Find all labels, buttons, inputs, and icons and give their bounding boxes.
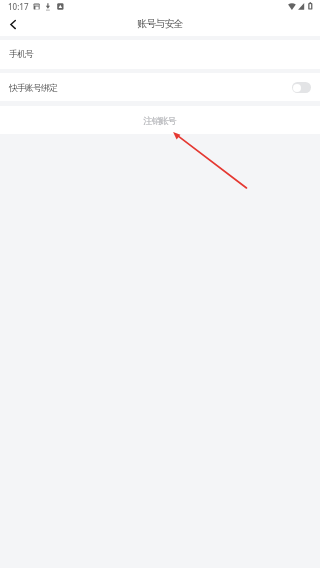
staticText: 手机号 (9, 49, 34, 60)
staticText: 10:17 (8, 1, 29, 12)
button[interactable]: 快手账号绑定开关 (292, 82, 311, 93)
button[interactable]: 手机号 (0, 40, 320, 69)
button[interactable]: 注销账号 (0, 106, 320, 134)
staticText: 注销账号 (143, 115, 176, 127)
button[interactable]: 返回 (4, 16, 22, 34)
staticText: 账号与安全 (137, 17, 183, 30)
staticText: 快手账号绑定 (9, 83, 58, 94)
button[interactable]: 快手账号绑定 (0, 73, 320, 101)
